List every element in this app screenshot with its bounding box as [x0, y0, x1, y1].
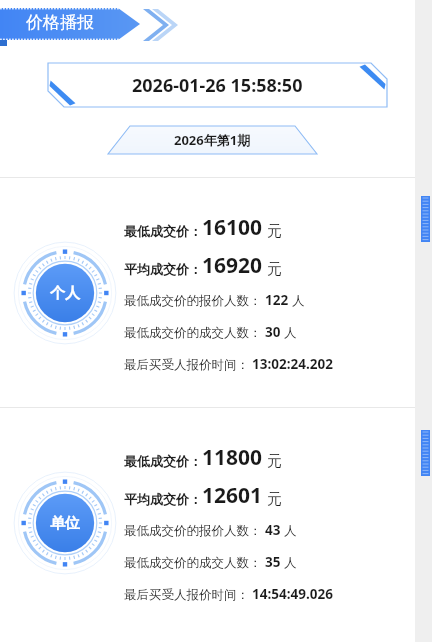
staticText: 35 — [265, 553, 281, 571]
staticText: 2026-01-26 15:58:50 — [132, 73, 303, 98]
button[interactable]: 价格播报 — [0, 0, 415, 50]
staticText: 14:54:49.026 — [252, 585, 333, 603]
staticText: 12601 — [202, 481, 263, 510]
other: 单位 — [12, 470, 118, 576]
staticText: 最低成交价的报价人数： — [124, 523, 262, 539]
staticText: 13:02:24.202 — [252, 355, 333, 373]
staticText: 单位 — [50, 514, 80, 533]
staticText: 最低成交价的报价人数： — [124, 293, 262, 309]
staticText: 43 — [265, 521, 281, 539]
staticText: 元 — [267, 260, 282, 279]
staticText: 人 — [284, 325, 297, 341]
staticText: 人 — [284, 555, 297, 571]
staticText: 最低成交价： — [124, 453, 202, 469]
staticText: 122 — [265, 291, 289, 309]
button[interactable]: Side tab — [421, 430, 430, 476]
staticText: 16920 — [202, 251, 263, 280]
staticText: 16100 — [202, 213, 263, 242]
staticText: 平均成交价： — [124, 491, 202, 507]
staticText: 最低成交价的成交人数： — [124, 555, 262, 571]
button[interactable]: 单位 — [0, 408, 415, 637]
button[interactable]: 2026年第1期 — [108, 125, 317, 155]
staticText: 人 — [284, 523, 297, 539]
staticText: 最后买受人报价时间： — [124, 357, 249, 373]
button[interactable]: 个人 — [0, 178, 415, 407]
staticText: 30 — [265, 323, 281, 341]
staticText: 最低成交价的成交人数： — [124, 325, 262, 341]
staticText: 个人 — [50, 284, 80, 303]
staticText: 最低成交价： — [124, 223, 202, 239]
staticText: 元 — [267, 490, 282, 509]
button[interactable]: Side tab — [421, 196, 430, 242]
staticText: 2026年第1期 — [174, 131, 251, 149]
button[interactable]: 2026-01-26 15:58:50 — [48, 63, 387, 107]
staticText: 11800 — [202, 443, 263, 472]
staticText: 平均成交价： — [124, 261, 202, 277]
other: 个人 — [12, 240, 118, 346]
staticText: 元 — [267, 222, 282, 241]
staticText: 最后买受人报价时间： — [124, 587, 249, 603]
staticText: 人 — [292, 293, 305, 309]
staticText: 元 — [267, 452, 282, 471]
staticText: 价格播报 — [26, 12, 94, 33]
